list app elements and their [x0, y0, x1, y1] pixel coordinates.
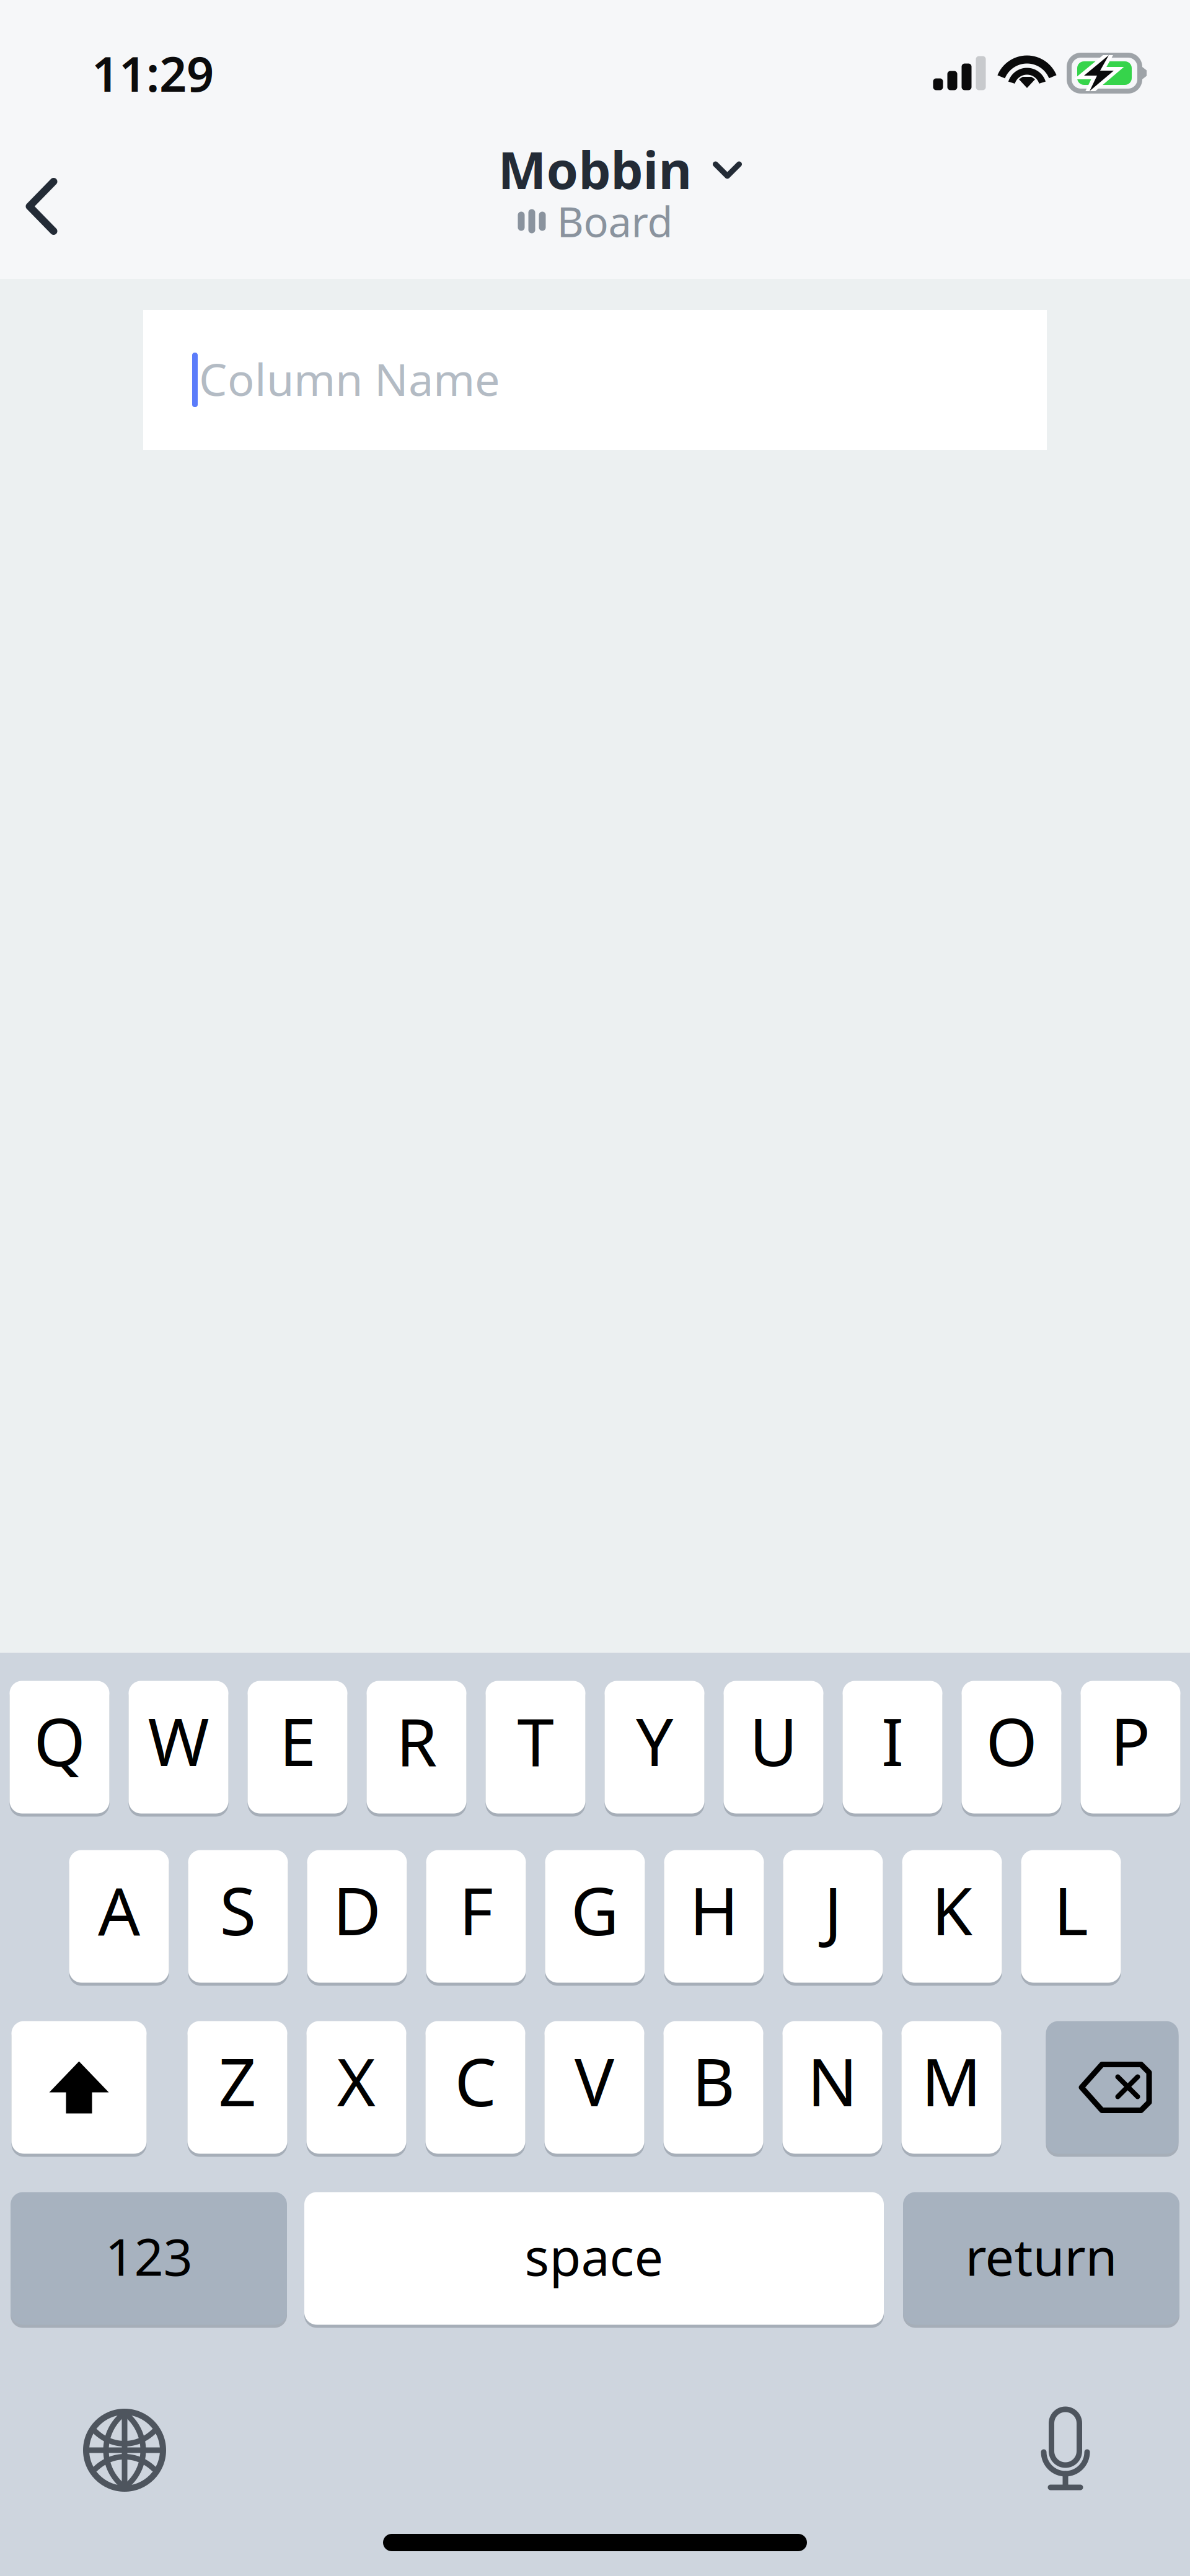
button[interactable]: G — [545, 1848, 645, 1984]
staticText: E — [279, 1696, 316, 1784]
button[interactable]: J — [783, 1848, 883, 1984]
button[interactable]: Y — [605, 1679, 704, 1815]
button[interactable]: Shift — [11, 2020, 147, 2155]
button[interactable]: C — [425, 2020, 525, 2155]
staticText: T — [517, 1696, 554, 1784]
staticText: 11:29 — [92, 41, 214, 105]
button[interactable]: R — [367, 1679, 466, 1815]
button[interactable]: S — [188, 1848, 288, 1984]
staticText: D — [333, 1866, 381, 1953]
button[interactable]: space — [304, 2191, 884, 2326]
staticText: U — [749, 1696, 798, 1784]
staticText: Z — [218, 2037, 256, 2124]
button[interactable]: 123 — [11, 2191, 287, 2326]
staticText: X — [337, 2037, 376, 2124]
button[interactable]: Dictate — [1041, 2409, 1091, 2491]
button[interactable]: B — [663, 2020, 763, 2155]
button[interactable]: U — [724, 1679, 823, 1815]
button[interactable]: Column Name — [143, 310, 1047, 450]
staticText: Mobbin — [498, 135, 692, 203]
staticText: A — [98, 1866, 140, 1953]
button[interactable]: P — [1081, 1679, 1180, 1815]
staticText: Q — [34, 1696, 85, 1784]
staticText: space — [525, 2222, 663, 2290]
staticText: O — [986, 1696, 1037, 1784]
button[interactable]: T — [486, 1679, 585, 1815]
staticText: H — [690, 1866, 738, 1953]
staticText: Board — [557, 194, 673, 249]
button[interactable]: D — [307, 1848, 407, 1984]
staticText: Column Name — [199, 349, 500, 408]
button[interactable]: E — [248, 1679, 347, 1815]
staticText: J — [824, 1866, 842, 1953]
staticText: R — [396, 1696, 437, 1784]
button[interactable]: K — [902, 1848, 1002, 1984]
button[interactable]: I — [843, 1679, 942, 1815]
staticText: return — [965, 2222, 1117, 2290]
staticText: K — [932, 1866, 972, 1953]
button[interactable]: O — [962, 1679, 1061, 1815]
staticText: F — [459, 1866, 493, 1953]
staticText: I — [881, 1696, 904, 1784]
staticText: W — [148, 1696, 209, 1784]
button[interactable]: H — [664, 1848, 764, 1984]
button[interactable]: return — [903, 2191, 1179, 2326]
button[interactable]: Back — [4, 169, 79, 244]
button[interactable]: A — [69, 1848, 169, 1984]
button[interactable]: W — [129, 1679, 228, 1815]
button[interactable]: Mobbin — [409, 147, 781, 238]
staticText: B — [692, 2037, 735, 2124]
staticText: 123 — [105, 2222, 192, 2290]
button[interactable]: F — [426, 1848, 526, 1984]
button[interactable]: V — [544, 2020, 644, 2155]
button[interactable]: L — [1021, 1848, 1121, 1984]
button[interactable]: N — [782, 2020, 882, 2155]
button[interactable]: Next keyboard — [83, 2409, 166, 2492]
staticText: S — [220, 1866, 256, 1953]
button[interactable]: M — [901, 2020, 1001, 2155]
staticText: C — [455, 2037, 496, 2124]
button[interactable]: Delete — [1046, 2020, 1179, 2155]
staticText: G — [571, 1866, 619, 1953]
staticText: L — [1054, 1866, 1088, 1953]
button[interactable]: Z — [187, 2020, 287, 2155]
staticText: P — [1110, 1696, 1151, 1784]
button[interactable]: X — [306, 2020, 406, 2155]
staticText: Y — [636, 1696, 673, 1784]
staticText: M — [921, 2037, 981, 2124]
staticText: N — [807, 2037, 857, 2124]
staticText: V — [575, 2037, 614, 2124]
button[interactable]: Q — [10, 1679, 109, 1815]
